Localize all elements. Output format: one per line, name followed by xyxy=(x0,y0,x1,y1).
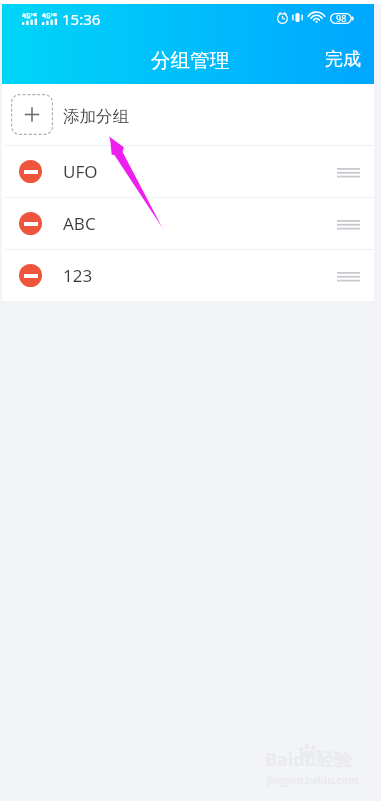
staticText: 分组管理 xyxy=(151,48,229,73)
button[interactable]: Remove ABC xyxy=(2,198,374,249)
staticText: ABC xyxy=(63,212,96,235)
staticText: 123 xyxy=(63,264,93,287)
staticText: 完成 xyxy=(325,48,361,71)
button[interactable]: Reorder ABC xyxy=(325,205,374,242)
staticText: jingyan.baidu.com xyxy=(266,773,358,787)
staticText: UFO xyxy=(63,160,98,183)
button[interactable]: Reorder UFO xyxy=(325,153,374,190)
staticText: 15:36 xyxy=(62,9,101,29)
button[interactable]: 完成 xyxy=(311,36,374,80)
button[interactable]: Remove 123 xyxy=(2,250,374,301)
staticText: 98 xyxy=(336,12,347,24)
staticText: Baidu经验 xyxy=(265,747,353,772)
button[interactable]: Remove UFO xyxy=(19,160,42,183)
staticText: 添加分组 xyxy=(63,106,129,127)
button[interactable]: Reorder 123 xyxy=(325,257,374,294)
button[interactable]: 添加分组 xyxy=(2,84,374,145)
button[interactable]: Remove ABC xyxy=(19,212,42,235)
button[interactable]: Remove UFO xyxy=(2,146,374,197)
button[interactable]: Remove 123 xyxy=(19,264,42,287)
